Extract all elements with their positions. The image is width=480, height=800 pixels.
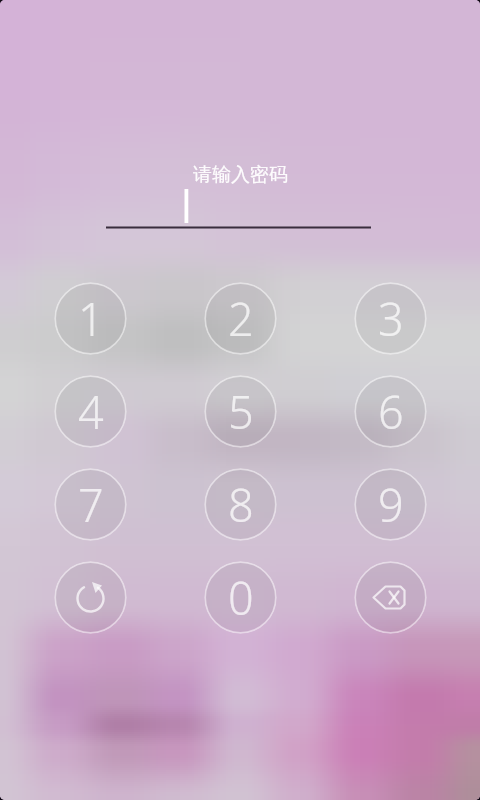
button[interactable]: 2	[204, 282, 277, 355]
button[interactable]: 9	[354, 468, 427, 541]
staticText: 4	[78, 381, 104, 442]
button[interactable]: 7	[54, 468, 127, 541]
button[interactable]: 8	[204, 468, 277, 541]
staticText: 3	[378, 288, 404, 349]
staticText: 6	[378, 381, 404, 442]
staticText: 7	[78, 474, 104, 535]
staticText: 5	[228, 381, 254, 442]
staticText: 2	[228, 288, 254, 349]
staticText: 8	[228, 474, 254, 535]
staticText: 1	[78, 288, 104, 349]
button[interactable]: 5	[204, 375, 277, 448]
button[interactable]: Backspace	[354, 561, 427, 634]
button[interactable]: 6	[354, 375, 427, 448]
staticText: 0	[228, 567, 254, 628]
staticText: 9	[378, 474, 404, 535]
button[interactable]: 4	[54, 375, 127, 448]
staticText: 请输入密码	[193, 163, 288, 187]
button[interactable]: Reset	[54, 561, 127, 634]
button[interactable]: 3	[354, 282, 427, 355]
button[interactable]: 0	[204, 561, 277, 634]
button[interactable]: 1	[54, 282, 127, 355]
